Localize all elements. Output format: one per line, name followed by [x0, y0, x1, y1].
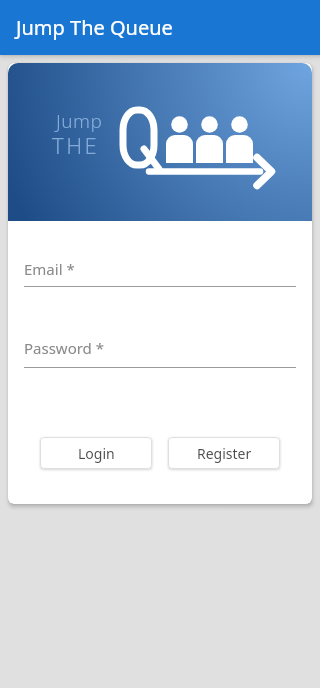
button[interactable]: Email *	[24, 259, 296, 287]
button[interactable]: Register	[168, 437, 280, 469]
staticText: Register	[197, 444, 252, 463]
staticText: Password *	[24, 338, 105, 358]
staticText: Email *	[24, 259, 75, 279]
button[interactable]: Password *	[24, 338, 296, 368]
staticText: Jump	[56, 108, 103, 134]
staticText: Login	[78, 444, 115, 463]
staticText: THE	[52, 130, 100, 160]
staticText: Jump The Queue	[16, 14, 173, 41]
button[interactable]: Login	[40, 437, 152, 469]
